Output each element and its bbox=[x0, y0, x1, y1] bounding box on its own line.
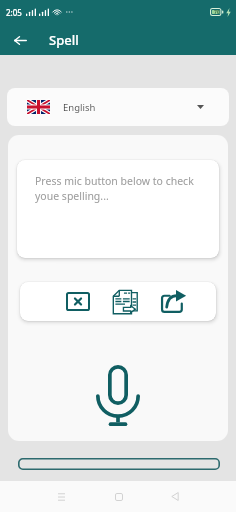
button[interactable]: Press mic button below to check youe spe… bbox=[17, 160, 219, 258]
staticText: 70 bbox=[214, 9, 220, 16]
button[interactable]: Clear text bbox=[62, 282, 94, 321]
staticText: Spell bbox=[49, 31, 79, 49]
button[interactable]: Home bbox=[105, 481, 133, 512]
staticText: English bbox=[63, 101, 96, 114]
button[interactable]: Copy text bbox=[109, 282, 141, 321]
button[interactable]: English bbox=[7, 88, 229, 126]
staticText: 2:05 bbox=[6, 7, 22, 18]
button[interactable]: Share bbox=[156, 282, 188, 321]
button[interactable]: Microphone bbox=[87, 361, 149, 430]
staticText: Press mic button below to check youe spe… bbox=[35, 174, 213, 203]
button[interactable]: Advertisement bbox=[18, 458, 220, 470]
button[interactable]: Back bbox=[161, 481, 189, 512]
button[interactable]: Recent apps bbox=[47, 481, 75, 512]
button[interactable]: Back bbox=[5, 25, 35, 55]
